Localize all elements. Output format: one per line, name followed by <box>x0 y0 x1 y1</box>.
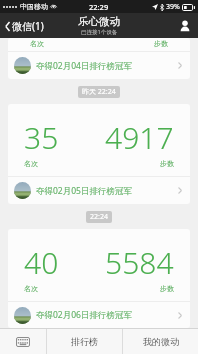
button[interactable]: 40 <box>8 229 190 328</box>
button[interactable]: Keyboard <box>0 329 46 354</box>
staticText: 昨天 22:24 <box>82 87 116 97</box>
staticText: 步数 <box>160 284 174 293</box>
staticText: 4917 <box>105 117 174 158</box>
staticText: 微信(1) <box>12 19 44 33</box>
staticText: 中国移动 <box>20 2 48 11</box>
button[interactable]: 名次 <box>8 38 190 79</box>
staticText: 40 <box>24 242 59 283</box>
staticText: 排行榜 <box>71 336 98 347</box>
button[interactable]: 35 <box>8 104 190 204</box>
staticText: 夺得02月05日排行榜冠军 <box>36 185 178 197</box>
staticText: 22:29 <box>89 2 109 12</box>
staticText: 22:24 <box>90 212 108 222</box>
staticText: 步数 <box>160 159 174 168</box>
staticText: 我的微动 <box>143 336 179 347</box>
staticText: 名次 <box>24 284 38 293</box>
staticText: 已连接1个设备 <box>81 28 118 36</box>
staticText: 39% <box>166 2 180 12</box>
button[interactable]: 微信(1) <box>3 16 46 36</box>
staticText: 名次 <box>30 39 44 48</box>
staticText: 夺得02月06日排行榜冠军 <box>36 309 178 321</box>
staticText: 乐心微动 <box>78 15 120 28</box>
button[interactable]: 排行榜 <box>47 329 122 354</box>
staticText: 5584 <box>105 242 174 283</box>
button[interactable]: 我的微动 <box>123 329 198 354</box>
staticText: 35 <box>24 117 59 158</box>
staticText: 步数 <box>154 39 168 48</box>
staticText: 名次 <box>24 159 38 168</box>
staticText: 夺得02月04日排行榜冠军 <box>36 60 178 72</box>
button[interactable]: Profile <box>177 18 193 34</box>
